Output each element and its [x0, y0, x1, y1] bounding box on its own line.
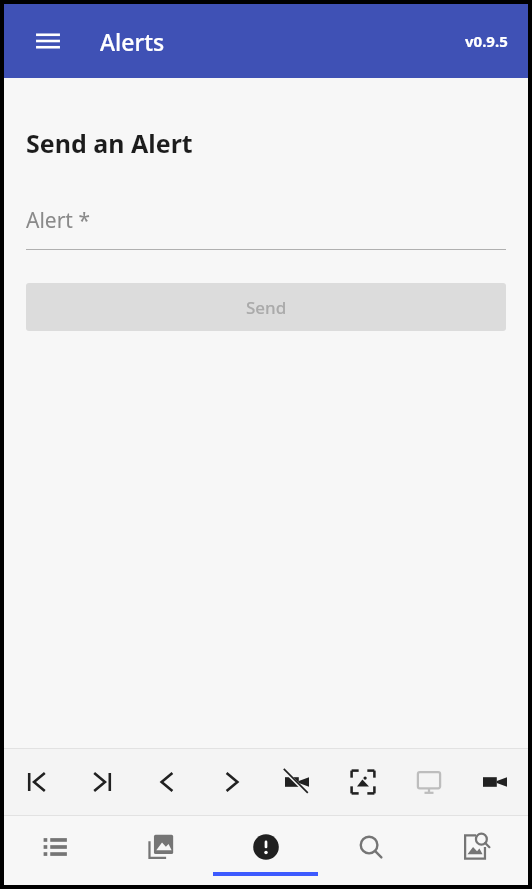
button[interactable]: Open navigation menu — [26, 19, 70, 63]
button[interactable]: Previous — [134, 749, 199, 815]
button[interactable]: Skip to end — [69, 749, 134, 815]
button[interactable]: Crop image — [330, 749, 396, 815]
button[interactable]: Image search — [423, 816, 528, 885]
button[interactable]: Record video — [462, 749, 528, 815]
button[interactable]: Camera off — [264, 749, 330, 815]
button[interactable]: Alerts — [213, 816, 318, 885]
button[interactable]: Photo library — [108, 816, 213, 885]
staticText: Alert * — [26, 206, 90, 235]
button[interactable]: Search — [318, 816, 423, 885]
button[interactable]: Pages list — [4, 816, 108, 885]
button[interactable]: Alert * — [26, 206, 506, 250]
staticText: Send — [246, 296, 287, 319]
staticText: v0.9.5 — [465, 31, 508, 51]
button[interactable]: Next — [199, 749, 264, 815]
staticText: Send an Alert — [26, 126, 193, 160]
button[interactable]: Send — [26, 283, 506, 331]
staticText: Alerts — [100, 26, 165, 57]
button[interactable]: Skip to start — [4, 749, 69, 815]
button[interactable]: Display — [396, 749, 462, 815]
